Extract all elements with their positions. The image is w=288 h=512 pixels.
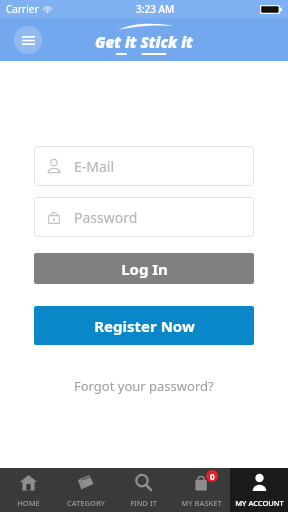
button[interactable]: MY ACCOUNT (230, 468, 288, 512)
staticText: CATEGORY (67, 498, 105, 508)
button[interactable]: Register Now (34, 306, 254, 345)
staticText: FIND IT (130, 498, 157, 508)
staticText: Register Now (94, 316, 195, 336)
staticText: E-Mail (74, 157, 115, 176)
staticText: Forgot your password? (74, 377, 214, 395)
staticText: Carrier (6, 2, 39, 16)
staticText: MY BASKET (181, 498, 222, 508)
staticText: 0 (210, 471, 215, 482)
staticText: Get it Stick it (95, 32, 193, 52)
staticText: HOME (17, 498, 40, 508)
button[interactable]: Forgot your password? (34, 373, 254, 399)
staticText: MY ACCOUNT (235, 498, 284, 508)
button[interactable]: Menu (14, 26, 42, 54)
staticText: Log In (121, 259, 168, 279)
button[interactable]: E-Mail (34, 146, 254, 186)
button[interactable]: CATEGORY (57, 468, 114, 512)
staticText: Password (74, 208, 138, 227)
button[interactable]: 0 (172, 468, 230, 512)
button[interactable]: FIND IT (114, 468, 172, 512)
button[interactable]: Password (34, 197, 254, 237)
button[interactable]: Log In (34, 253, 254, 284)
button[interactable]: HOME (0, 468, 57, 512)
staticText: 3:23 AM (136, 2, 175, 16)
